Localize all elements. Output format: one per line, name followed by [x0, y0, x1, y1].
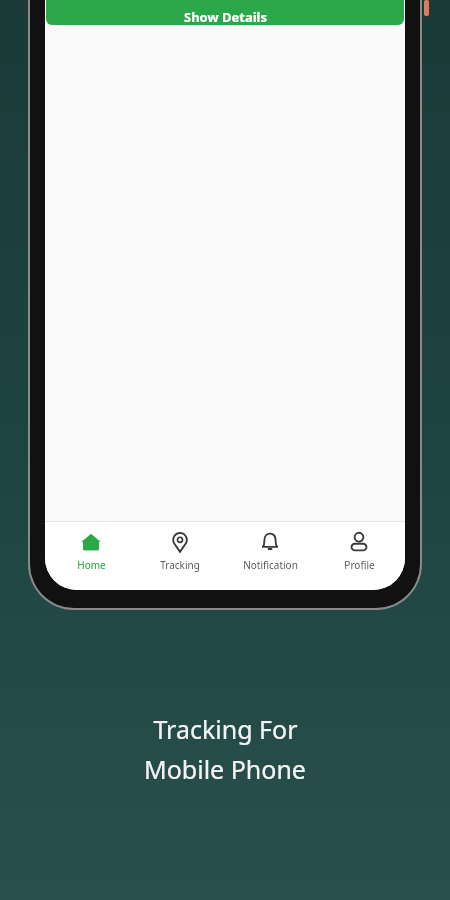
staticText: Show Details [184, 8, 267, 25]
staticText: Profile [344, 558, 375, 572]
staticText: Notification [243, 558, 298, 572]
staticText: Home [77, 558, 106, 572]
button[interactable]: Profile [315, 531, 403, 572]
button[interactable]: Notification [226, 531, 314, 572]
button[interactable]: Show Details [46, 0, 404, 25]
staticText: Tracking For [153, 712, 298, 746]
button[interactable]: Home [47, 531, 135, 572]
staticText: Tracking [160, 558, 200, 572]
staticText: Mobile Phone [144, 752, 306, 786]
button[interactable]: Tracking [136, 531, 224, 572]
